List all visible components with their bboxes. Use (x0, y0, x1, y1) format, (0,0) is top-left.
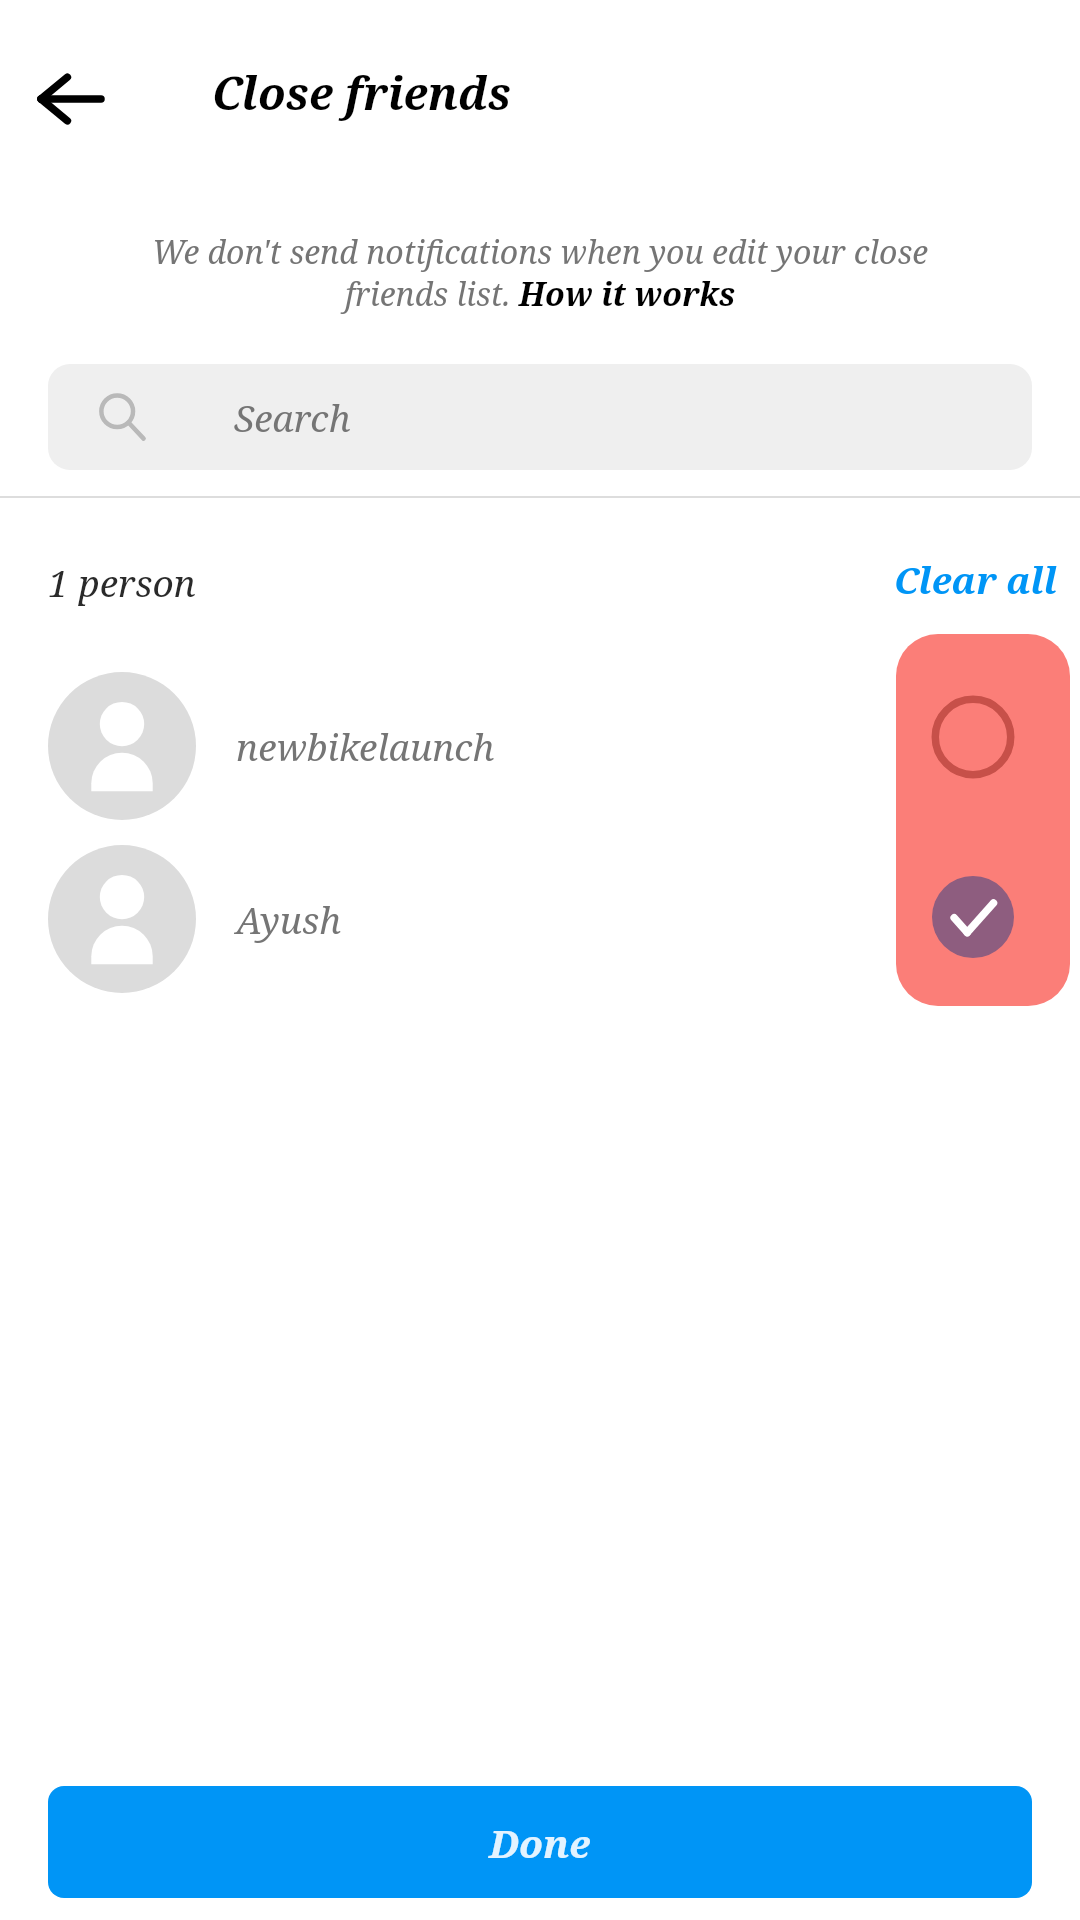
button[interactable]: Ayush (0, 833, 862, 1005)
button[interactable]: newbikelaunch (0, 660, 862, 832)
button[interactable]: Clear all (888, 548, 1064, 610)
staticText: We don't send notifications when you edi… (133, 230, 947, 315)
button[interactable]: Ayush selected (932, 876, 1014, 958)
staticText: Clear all (894, 554, 1058, 604)
staticText: Ayush (236, 894, 342, 944)
staticText: 1 person (48, 557, 196, 607)
staticText: Search (234, 392, 351, 442)
button[interactable]: Search (48, 364, 1032, 470)
staticText: Close friends (212, 62, 511, 123)
button[interactable]: Select newbikelaunch (932, 696, 1014, 778)
button[interactable]: Done (48, 1786, 1032, 1898)
staticText: Done (489, 1816, 591, 1869)
staticText: newbikelaunch (236, 721, 495, 771)
button[interactable]: Back (38, 66, 104, 132)
